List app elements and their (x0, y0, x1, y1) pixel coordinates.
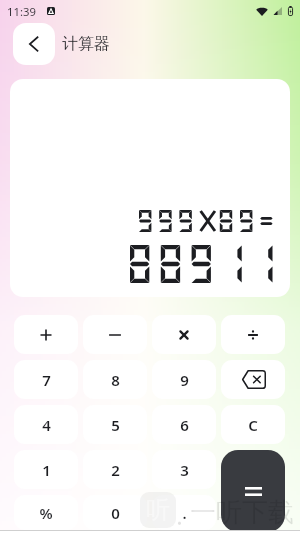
staticText: 6 (180, 415, 189, 435)
staticText: 2 (111, 460, 120, 480)
button[interactable]: 9 (152, 360, 216, 399)
button[interactable]: . (152, 495, 216, 530)
button[interactable]: Equals (221, 450, 285, 532)
other: Minus (109, 329, 121, 341)
staticText: 4 (42, 415, 51, 435)
other: Backspace (241, 370, 266, 389)
button[interactable]: 6 (152, 405, 216, 444)
button[interactable]: Multiply (152, 315, 216, 354)
button[interactable]: 3 (152, 450, 216, 489)
button[interactable]: Backspace (221, 360, 285, 399)
staticText: . (176, 497, 183, 532)
staticText: 8 (111, 370, 120, 390)
other: Divide (247, 329, 259, 341)
staticText: 9 (180, 370, 189, 390)
staticText: 5 (111, 415, 120, 435)
staticText: 1 (42, 460, 51, 480)
staticText: 11:39 (7, 4, 36, 19)
other: Multiply (178, 329, 190, 341)
staticText: 一听下载 (190, 496, 294, 529)
button[interactable]: 1 (14, 450, 78, 489)
button[interactable]: 2 (83, 450, 147, 489)
button[interactable]: 7 (14, 360, 78, 399)
button[interactable]: Minus (83, 315, 147, 354)
button[interactable]: Divide (221, 315, 285, 354)
staticText: 计算器 (62, 34, 110, 54)
button[interactable]: 0 (83, 495, 147, 530)
button[interactable]: C (221, 405, 285, 444)
staticText: . (182, 503, 187, 523)
staticText: 3 (180, 460, 189, 480)
staticText: % (39, 503, 53, 523)
button[interactable]: Plus (14, 315, 78, 354)
button[interactable]: 4 (14, 405, 78, 444)
button[interactable]: 5 (83, 405, 147, 444)
button[interactable]: % (14, 495, 78, 530)
button[interactable]: 8 (83, 360, 147, 399)
button[interactable]: Back (13, 23, 55, 65)
staticText: 0 (111, 503, 120, 523)
staticText: 7 (42, 370, 51, 390)
other: Plus (40, 329, 52, 341)
staticText: C (248, 415, 258, 435)
